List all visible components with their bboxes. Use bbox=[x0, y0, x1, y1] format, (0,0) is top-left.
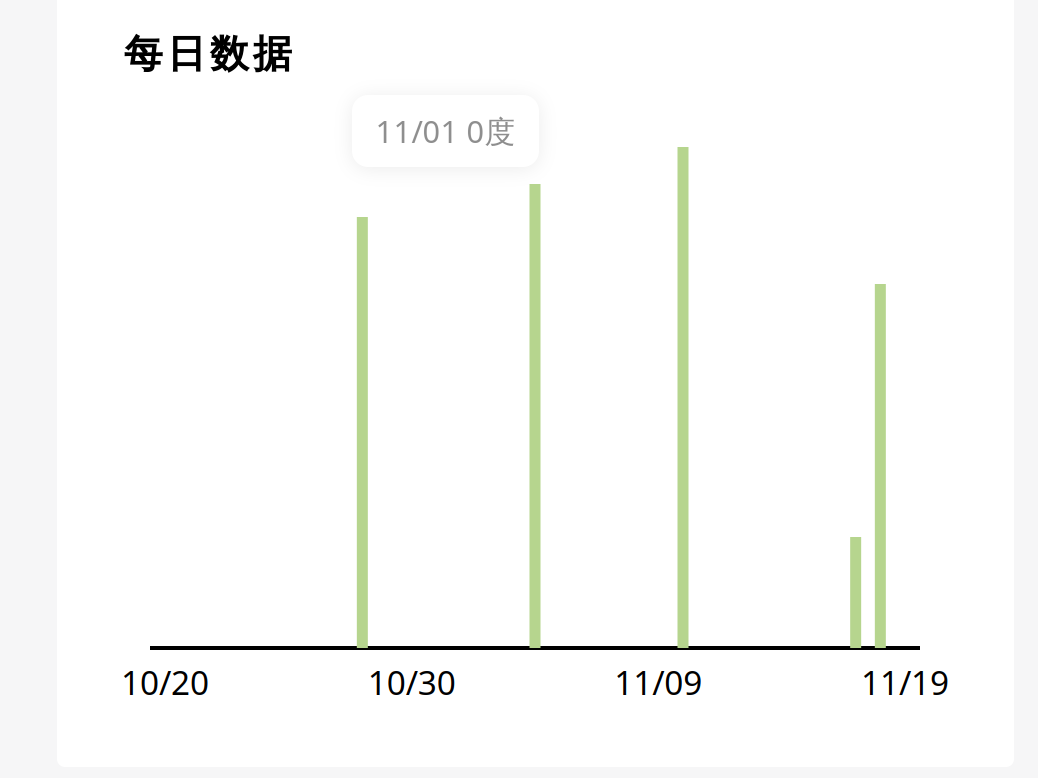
button[interactable]: 11/17 bbox=[850, 537, 861, 648]
button[interactable]: 10/28 bbox=[357, 217, 368, 648]
staticText: 每日数据 bbox=[124, 30, 292, 78]
staticText: 11/09 bbox=[614, 660, 702, 704]
staticText: 10/30 bbox=[368, 660, 456, 704]
staticText: 10/20 bbox=[121, 660, 209, 704]
staticText: 11/19 bbox=[861, 660, 949, 704]
staticText: 11/01 0度 bbox=[375, 111, 515, 151]
button[interactable]: 11/18 bbox=[875, 284, 886, 648]
button[interactable]: 11/01 0度 bbox=[352, 95, 539, 167]
